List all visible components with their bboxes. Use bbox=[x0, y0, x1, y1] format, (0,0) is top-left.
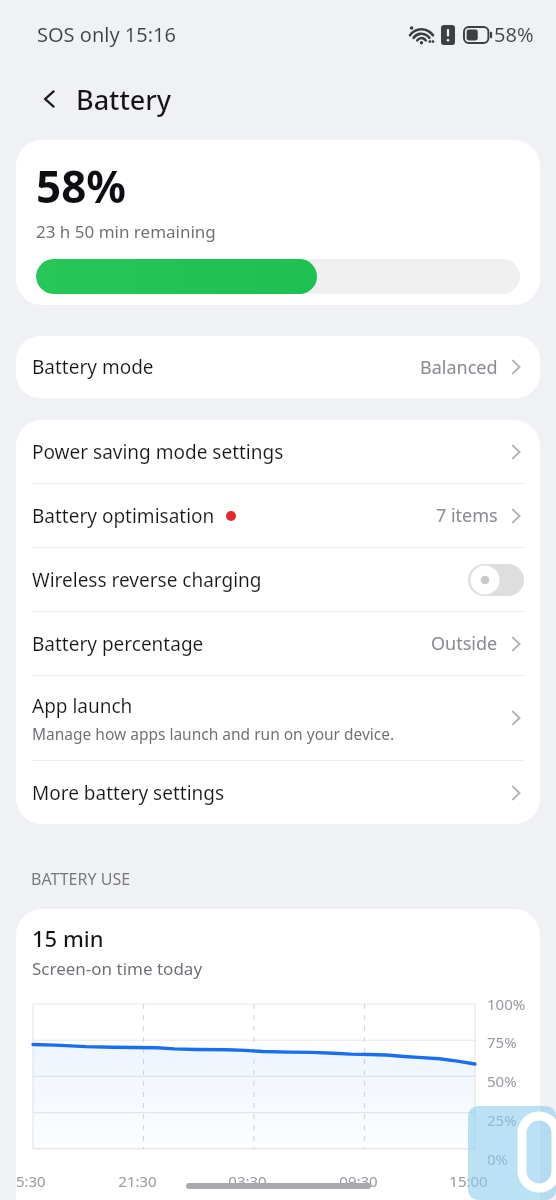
staticText: Battery mode bbox=[32, 354, 154, 380]
staticText: 15:00 bbox=[449, 1171, 488, 1191]
staticText: 58% bbox=[494, 21, 534, 48]
staticText: App launch bbox=[32, 693, 133, 719]
staticText: 25% bbox=[487, 1110, 517, 1130]
button[interactable]: Battery mode bbox=[16, 336, 540, 398]
button[interactable]: Wireless reverse charging toggle bbox=[468, 564, 524, 596]
button[interactable]: Battery percentage bbox=[16, 612, 540, 675]
staticText: SOS only 15:16 bbox=[37, 21, 176, 48]
staticText: Wireless reverse charging bbox=[32, 567, 468, 593]
button[interactable]: App launch bbox=[16, 676, 540, 760]
staticText: Power saving mode settings bbox=[32, 439, 284, 465]
button[interactable]: Power saving mode settings bbox=[16, 420, 540, 483]
staticText: BATTERY USE bbox=[31, 868, 131, 890]
staticText: 7 items bbox=[436, 503, 498, 528]
staticText: Battery optimisation bbox=[32, 503, 215, 529]
staticText: Battery percentage bbox=[32, 631, 204, 657]
staticText: 03:30 bbox=[228, 1171, 267, 1191]
staticText: 09:30 bbox=[339, 1171, 378, 1191]
staticText: 21:30 bbox=[118, 1171, 157, 1191]
staticText: More battery settings bbox=[32, 780, 225, 806]
staticText: Balanced bbox=[420, 355, 498, 380]
staticText: 100% bbox=[487, 994, 526, 1014]
staticText: Battery bbox=[76, 81, 171, 118]
staticText: Screen-on time today bbox=[32, 957, 203, 980]
staticText: 15:30 bbox=[16, 1171, 46, 1191]
staticText: 58% bbox=[36, 156, 127, 216]
staticText: 0% bbox=[487, 1149, 509, 1169]
other: Gesture navigation hint bbox=[468, 1106, 556, 1200]
button[interactable]: More battery settings bbox=[16, 761, 540, 824]
button[interactable]: Back bbox=[33, 82, 67, 116]
button[interactable]: 15 min bbox=[16, 909, 540, 1200]
staticText: Outside bbox=[431, 631, 498, 656]
button[interactable]: Wireless reverse charging bbox=[16, 548, 540, 611]
staticText: 50% bbox=[487, 1071, 517, 1091]
staticText: Manage how apps launch and run on your d… bbox=[32, 723, 395, 744]
staticText: 75% bbox=[487, 1032, 517, 1052]
staticText: 15 min bbox=[32, 923, 104, 953]
button[interactable]: Battery optimisation bbox=[16, 484, 540, 547]
staticText: 23 h 50 min remaining bbox=[36, 220, 216, 243]
